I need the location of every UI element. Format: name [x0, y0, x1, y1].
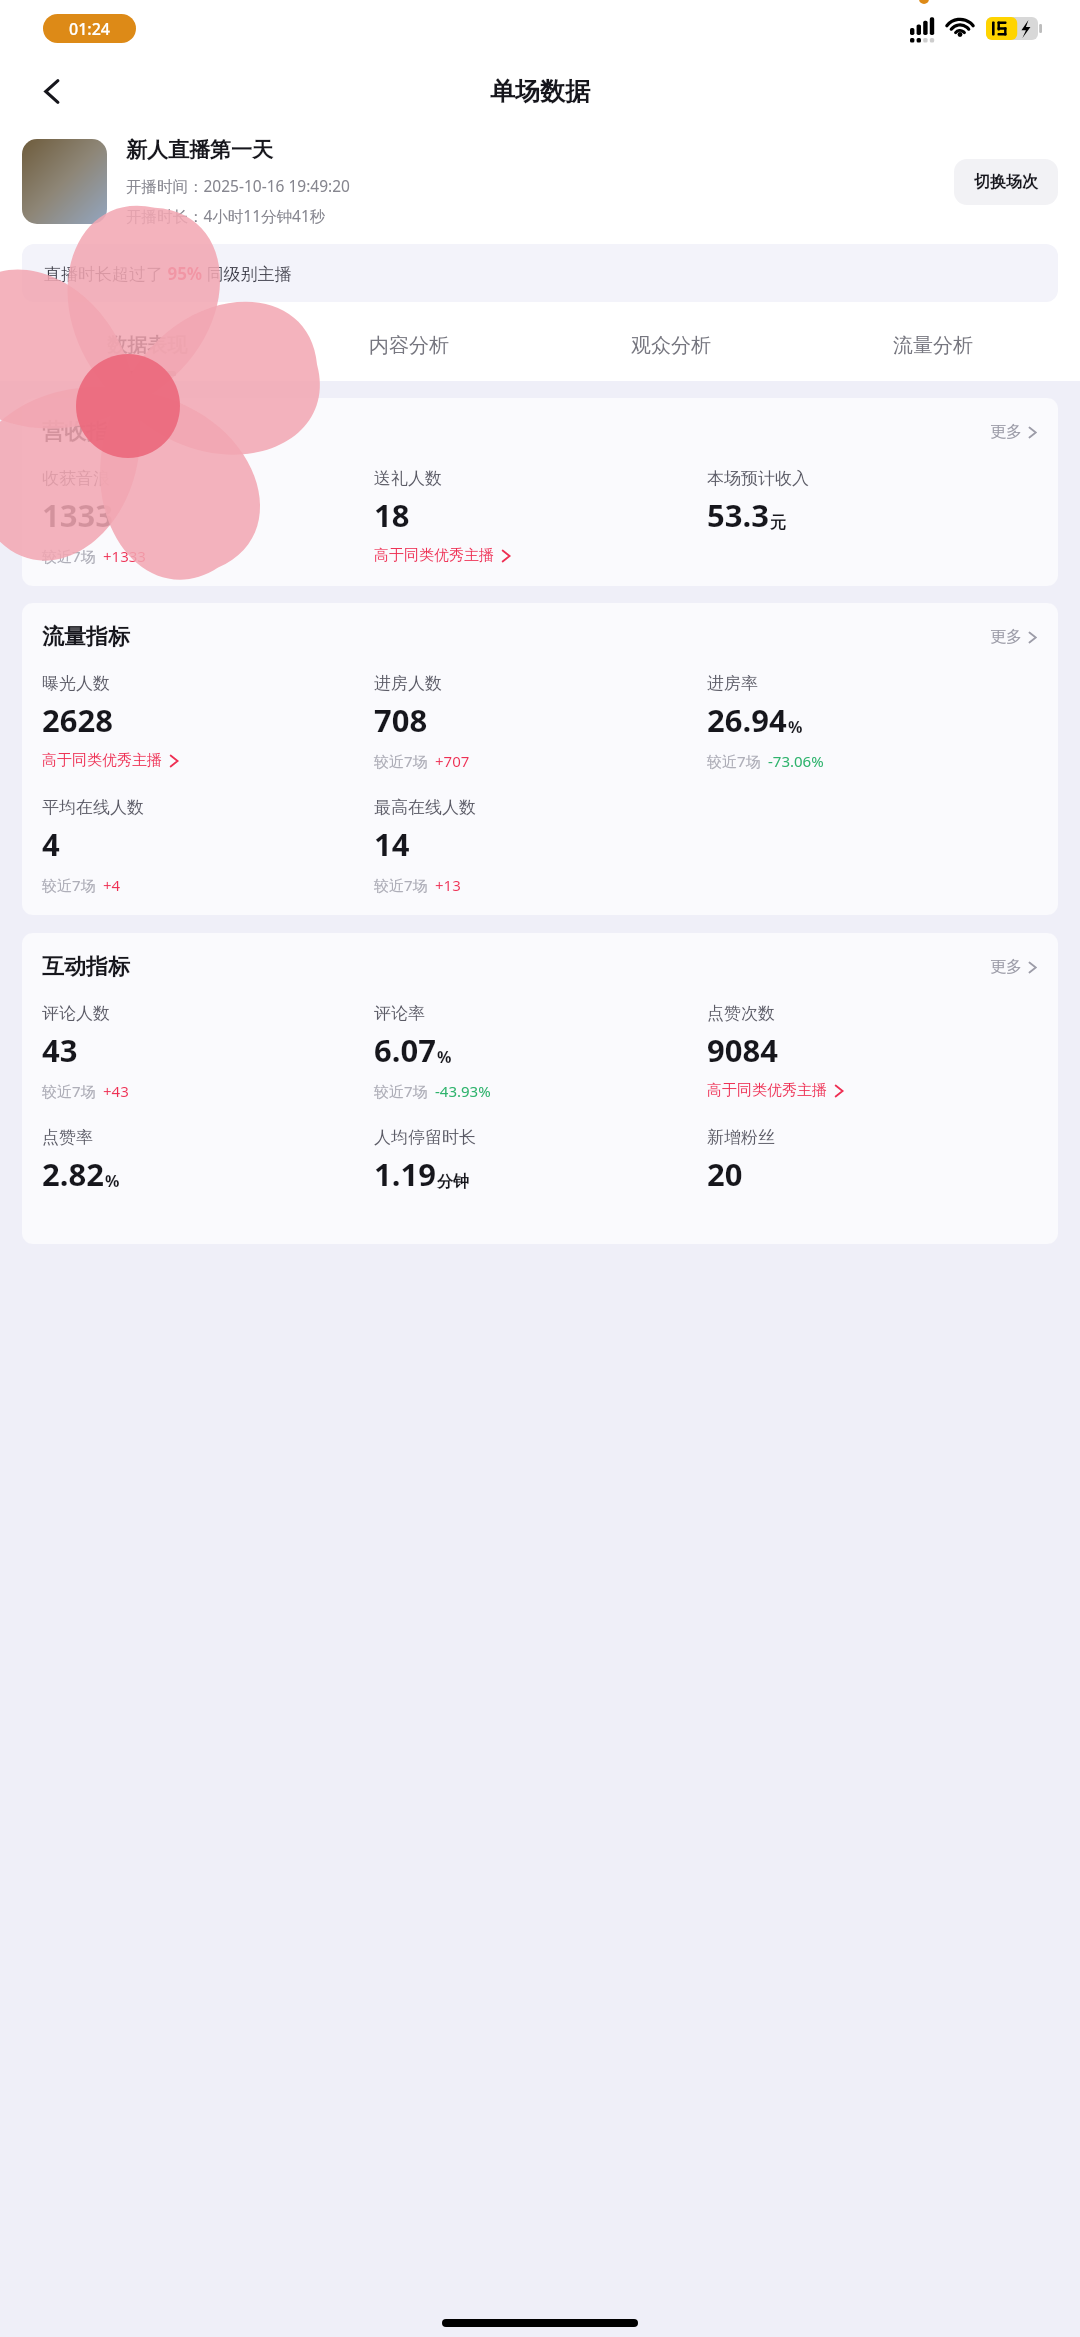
- staticText: 内容分析: [369, 333, 449, 358]
- staticText: 开播时长：4小时11分钟41秒: [126, 205, 326, 226]
- staticText: 708: [374, 699, 428, 741]
- staticText: 高于同类优秀主播: [707, 1081, 827, 1100]
- button[interactable]: 切换场次: [954, 159, 1058, 205]
- staticText: 评论人数: [42, 1003, 110, 1024]
- staticText: 新人直播第一天: [126, 137, 273, 163]
- staticText: 较近7场: [42, 546, 96, 566]
- staticText: +707: [435, 751, 470, 771]
- staticText: 最高在线人数: [374, 797, 476, 818]
- button[interactable]: 更多: [988, 623, 1040, 651]
- staticText: 平均在线人数: [42, 797, 144, 818]
- button[interactable]: 更多: [988, 953, 1040, 981]
- staticText: 26.94: [707, 699, 787, 741]
- staticText: 切换场次: [974, 172, 1038, 192]
- staticText: 14: [374, 823, 410, 865]
- staticText: 2.82: [42, 1153, 104, 1195]
- staticText: 18: [374, 494, 410, 536]
- staticText: 数据表现: [107, 333, 187, 358]
- staticText: 点赞率: [42, 1127, 93, 1148]
- staticText: 更多: [990, 957, 1022, 977]
- button[interactable]: 高于同类优秀主播: [42, 751, 180, 770]
- staticText: +43: [103, 1081, 129, 1101]
- staticText: 流量指标: [42, 623, 130, 651]
- staticText: 较近7场: [374, 751, 428, 771]
- staticText: 营收指标: [42, 418, 130, 446]
- staticText: %: [105, 1170, 120, 1192]
- staticText: 开播时间：2025-10-16 19:49:20: [126, 175, 350, 196]
- staticText: 高于同类优秀主播: [42, 751, 162, 770]
- staticText: 送礼人数: [374, 468, 442, 489]
- staticText: 元: [770, 513, 786, 533]
- staticText: 高于同类优秀主播: [374, 546, 494, 565]
- staticText: 较近7场: [374, 1081, 428, 1101]
- staticText: 较近7场: [707, 751, 761, 771]
- staticText: -73.06%: [768, 751, 824, 771]
- staticText: 较近7场: [374, 875, 428, 895]
- staticText: 1.19: [374, 1153, 436, 1195]
- staticText: 分钟: [437, 1172, 469, 1192]
- staticText: 进房人数: [374, 673, 442, 694]
- staticText: 较近7场: [42, 875, 96, 895]
- button[interactable]: Back: [24, 63, 80, 119]
- staticText: 评论率: [374, 1003, 425, 1024]
- staticText: 1333: [42, 494, 113, 536]
- button[interactable]: 更多: [988, 418, 1040, 446]
- staticText: 进房率: [707, 673, 758, 694]
- staticText: 点赞次数: [707, 1003, 775, 1024]
- staticText: 53.3: [707, 494, 769, 536]
- staticText: 更多: [990, 422, 1022, 442]
- staticText: 曝光人数: [42, 673, 110, 694]
- button[interactable]: 数据表现: [16, 328, 278, 381]
- staticText: 收获音浪: [42, 468, 110, 489]
- staticText: %: [788, 716, 803, 738]
- staticText: 9084: [707, 1029, 778, 1071]
- staticText: 较近7场: [42, 1081, 96, 1101]
- staticText: +4: [103, 875, 121, 895]
- staticText: 2628: [42, 699, 113, 741]
- staticText: 01:24: [69, 18, 110, 40]
- staticText: 观众分析: [631, 333, 711, 358]
- staticText: 4: [42, 823, 60, 865]
- staticText: +1333: [103, 546, 146, 566]
- staticText: 新增粉丝: [707, 1127, 775, 1148]
- staticText: 直播时长超过了 95% 同级别主播: [44, 262, 292, 285]
- staticText: 单场数据: [490, 76, 590, 107]
- button[interactable]: 观众分析: [540, 328, 802, 381]
- staticText: 6.07: [374, 1029, 436, 1071]
- staticText: 20: [707, 1153, 743, 1195]
- staticText: 流量分析: [893, 333, 973, 358]
- staticText: %: [437, 1046, 452, 1068]
- button[interactable]: 高于同类优秀主播: [374, 546, 512, 565]
- staticText: 本场预计收入: [707, 468, 809, 489]
- button[interactable]: 高于同类优秀主播: [707, 1081, 845, 1100]
- staticText: +13: [435, 875, 461, 895]
- staticText: 互动指标: [42, 953, 130, 981]
- staticText: 人均停留时长: [374, 1127, 476, 1148]
- staticText: 43: [42, 1029, 78, 1071]
- button[interactable]: 内容分析: [278, 328, 540, 381]
- staticText: 更多: [990, 627, 1022, 647]
- button[interactable]: 流量分析: [802, 328, 1064, 381]
- staticText: -43.93%: [435, 1081, 491, 1101]
